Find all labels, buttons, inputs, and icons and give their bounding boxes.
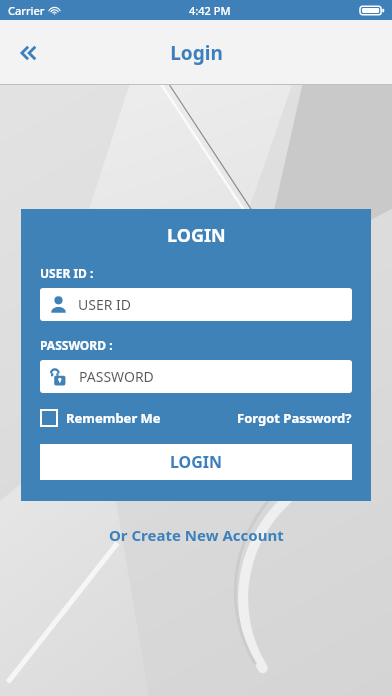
staticText: 4:42 PM (189, 3, 231, 18)
staticText: Forgot Password? (237, 409, 352, 427)
staticText: Login (170, 40, 223, 66)
button[interactable]: Or Create New Account (0, 525, 392, 545)
staticText: USER ID (78, 295, 132, 314)
staticText: USER ID : (40, 265, 94, 281)
button[interactable]: LOGIN (40, 444, 352, 480)
staticText: LOGIN (167, 223, 226, 248)
button[interactable]: PASSWORD (40, 360, 352, 393)
staticText: Carrier (8, 3, 45, 18)
staticText: LOGIN (170, 451, 223, 473)
button[interactable]: Back (10, 33, 50, 73)
staticText: PASSWORD : (40, 337, 113, 353)
staticText: Remember Me (66, 409, 161, 427)
staticText: Or Create New Account (109, 525, 284, 545)
button[interactable]: Remember Me (40, 406, 161, 430)
button[interactable]: USER ID (40, 288, 352, 321)
staticText: PASSWORD (79, 367, 154, 386)
button[interactable]: Forgot Password? (237, 406, 352, 430)
